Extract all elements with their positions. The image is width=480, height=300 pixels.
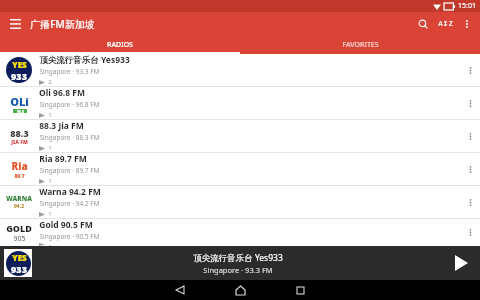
staticText: 1 xyxy=(48,144,52,152)
staticText: RADIOS xyxy=(107,40,133,50)
button[interactable]: More options xyxy=(456,13,478,35)
staticText: OLi xyxy=(10,94,29,109)
staticText: 933 xyxy=(11,70,27,82)
button[interactable]: Home xyxy=(222,280,258,300)
staticText: WARNA xyxy=(6,194,32,203)
button[interactable]: Ria xyxy=(0,153,480,185)
button[interactable]: More options xyxy=(462,54,478,86)
staticText: Singapore · 94.2 FM xyxy=(39,199,100,208)
staticText: 1 xyxy=(48,210,52,218)
staticText: Ria 89.7 FM xyxy=(39,153,87,165)
staticText: Singapore · 90.5 FM xyxy=(39,232,100,241)
staticText: Oli 96.8 FM xyxy=(39,87,85,99)
staticText: 1 xyxy=(48,177,52,185)
staticText: 88.3 xyxy=(10,127,29,139)
button[interactable]: Play xyxy=(444,246,478,280)
staticText: 88.3 Jia FM xyxy=(39,120,84,132)
staticText: Singapore · 88.3 FM xyxy=(39,133,100,142)
staticText: 顶尖流行音乐台 Yes933 xyxy=(39,54,130,66)
button[interactable]: RADIOS xyxy=(0,36,240,54)
staticText: 2 xyxy=(48,78,52,86)
staticText: A↕Z xyxy=(438,19,453,29)
button[interactable]: 88.3 xyxy=(0,120,480,152)
button[interactable]: Sort alphabetically xyxy=(434,13,456,35)
button[interactable]: YES xyxy=(0,246,480,280)
staticText: GOLD xyxy=(6,222,32,234)
button[interactable]: More options xyxy=(462,219,478,246)
staticText: 933 xyxy=(11,263,27,275)
button[interactable]: More options xyxy=(462,120,478,152)
staticText: Singapore · 89.7 FM xyxy=(39,166,100,175)
button[interactable]: Back xyxy=(162,280,198,300)
staticText: 1 xyxy=(48,111,52,119)
staticText: 广播FM新加坡 xyxy=(30,17,95,31)
button[interactable]: More options xyxy=(462,87,478,119)
button[interactable]: Recent apps xyxy=(282,280,318,300)
button[interactable]: GOLD xyxy=(0,219,480,246)
staticText: 1 xyxy=(48,243,52,246)
staticText: 905 xyxy=(13,234,26,244)
staticText: Singapore · 96.8 FM xyxy=(39,100,100,109)
button[interactable]: Search xyxy=(412,13,434,35)
staticText: Warna 94.2 FM xyxy=(39,186,101,198)
button[interactable]: OLi xyxy=(0,87,480,119)
staticText: 96.8 xyxy=(17,109,24,113)
button[interactable]: Open navigation drawer xyxy=(6,15,24,33)
staticText: Singapore · 93.3 FM xyxy=(203,265,273,275)
staticText: Ria xyxy=(11,159,28,173)
button[interactable]: FAVORITES xyxy=(240,36,480,54)
button[interactable]: WARNA xyxy=(0,186,480,218)
staticText: Gold 90.5 FM xyxy=(39,219,93,231)
staticText: Singapore · 93.3 FM xyxy=(39,67,100,76)
button[interactable]: More options xyxy=(462,186,478,218)
button[interactable]: YES xyxy=(0,54,480,86)
staticText: 89.7 xyxy=(14,173,25,180)
staticText: YES xyxy=(12,59,27,70)
button[interactable]: More options xyxy=(462,153,478,185)
staticText: YES xyxy=(12,252,27,263)
staticText: 顶尖流行音乐台 Yes933 xyxy=(193,252,283,264)
staticText: 94.2 xyxy=(14,203,24,210)
staticText: FAVORITES xyxy=(342,40,379,50)
staticText: JIA FM xyxy=(11,139,28,146)
staticText: 15:01 xyxy=(458,1,476,11)
